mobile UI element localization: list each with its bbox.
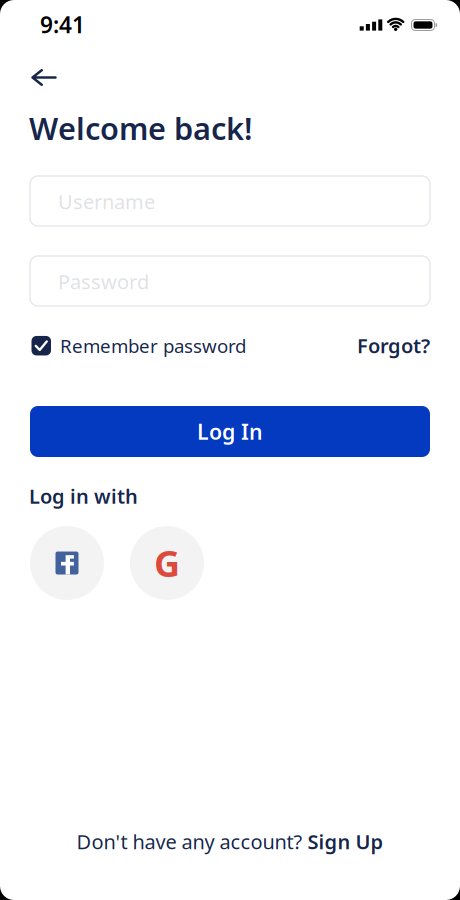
staticText: G (154, 539, 180, 587)
button[interactable]: Remember password (30, 333, 246, 358)
button[interactable]: Log In (30, 406, 430, 457)
staticText: Password (58, 268, 149, 295)
button[interactable]: Sign Up (307, 828, 383, 855)
button[interactable]: Back (24, 62, 63, 93)
staticText: 9:41 (40, 9, 85, 39)
staticText: Forgot? (357, 332, 430, 359)
button[interactable]: Forgot? (357, 332, 430, 359)
button[interactable]: Password (30, 256, 430, 306)
staticText: Log in with (29, 483, 138, 509)
staticText: Don't have any account? (76, 828, 302, 855)
staticText: Log In (197, 417, 263, 446)
button[interactable]: Log in with Google (130, 526, 204, 600)
button[interactable]: Username (30, 176, 430, 226)
staticText: Remember password (60, 333, 246, 358)
button[interactable]: Log in with Facebook (30, 526, 104, 600)
staticText: Sign Up (307, 828, 383, 855)
staticText: Welcome back! (29, 108, 252, 148)
staticText: Username (58, 188, 155, 215)
